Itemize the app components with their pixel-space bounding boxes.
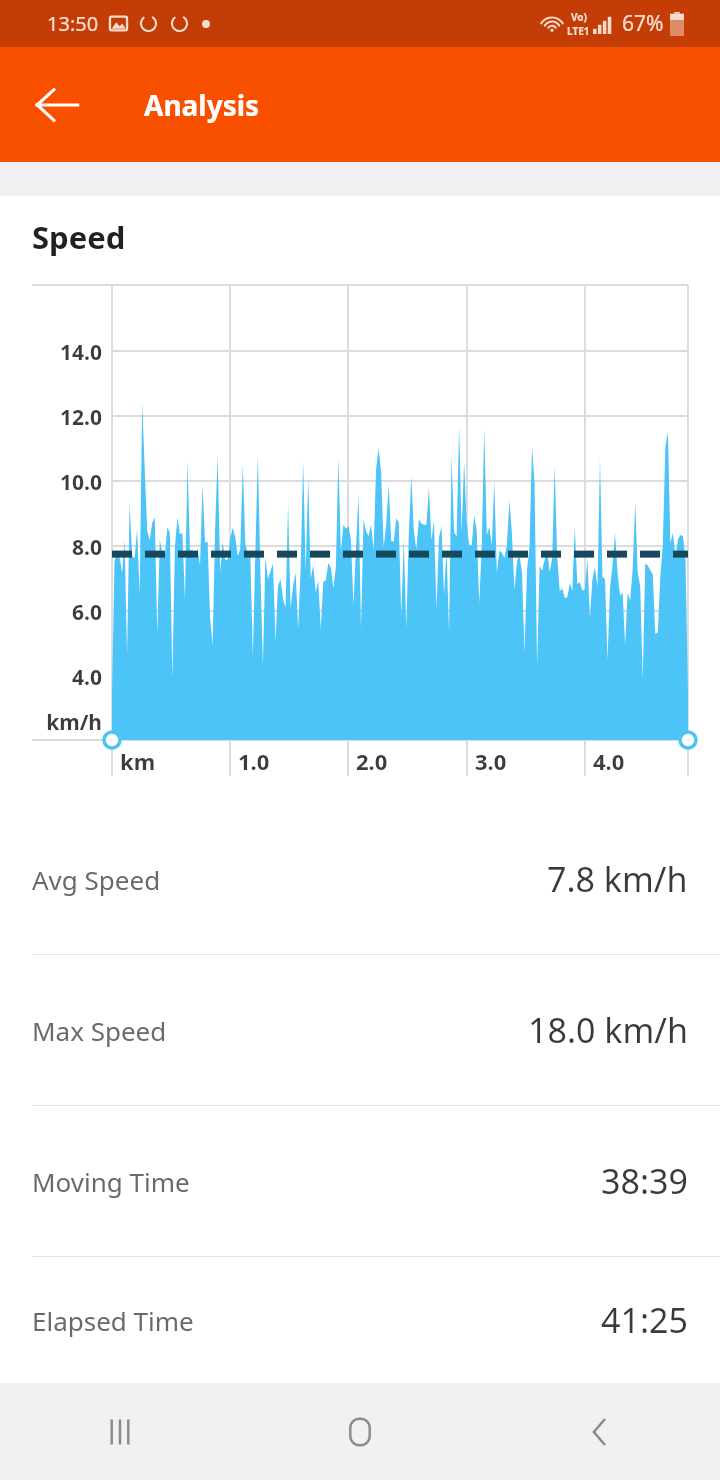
button[interactable]: Elapsed Time xyxy=(0,1257,720,1383)
staticText: Moving Time xyxy=(32,1164,190,1199)
staticText: 2.0 xyxy=(356,746,388,776)
button[interactable]: Back xyxy=(22,70,92,140)
staticText: km xyxy=(120,746,156,776)
staticText: Elapsed Time xyxy=(32,1303,194,1338)
button[interactable]: Home xyxy=(240,1383,480,1480)
button[interactable]: Moving Time xyxy=(0,1106,720,1256)
staticText: 38:39 xyxy=(601,1158,688,1204)
button[interactable]: Avg Speed xyxy=(0,804,720,954)
staticText: Avg Speed xyxy=(32,862,161,897)
staticText: LTE1 xyxy=(567,24,590,38)
button[interactable]: Max Speed xyxy=(0,955,720,1105)
staticText: km/h xyxy=(0,708,102,737)
staticText: Vo) xyxy=(571,10,587,24)
staticText: 4.0 xyxy=(0,663,102,692)
staticText: 8.0 xyxy=(0,533,102,562)
staticText: 3.0 xyxy=(475,746,507,776)
staticText: 13:50 xyxy=(47,10,99,37)
button[interactable]: Recent apps xyxy=(0,1383,240,1480)
staticText: 41:25 xyxy=(601,1297,688,1343)
staticText: Max Speed xyxy=(32,1013,167,1048)
button[interactable]: Back xyxy=(480,1383,720,1480)
staticText: 18.0 km/h xyxy=(528,1007,688,1053)
staticText: 67% xyxy=(622,9,664,38)
staticText: Speed xyxy=(32,216,126,258)
staticText: 10.0 xyxy=(0,468,102,497)
staticText: Analysis xyxy=(144,86,260,124)
staticText: 12.0 xyxy=(0,403,102,432)
staticText: 1.0 xyxy=(238,746,270,776)
staticText: 14.0 xyxy=(0,338,102,367)
staticText: 4.0 xyxy=(593,746,625,776)
staticText: 7.8 km/h xyxy=(547,856,688,902)
staticText: 6.0 xyxy=(0,598,102,627)
